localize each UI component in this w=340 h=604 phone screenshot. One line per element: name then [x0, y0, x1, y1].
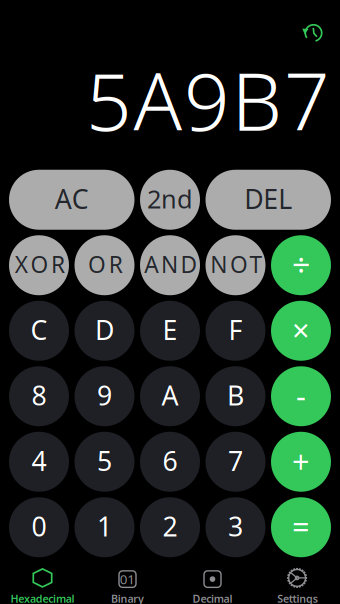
staticText: NOT: [210, 249, 262, 279]
button[interactable]: History: [294, 14, 331, 51]
staticText: 1: [97, 508, 112, 544]
staticText: ×: [292, 309, 310, 350]
button[interactable]: ×: [271, 301, 331, 361]
staticText: Decimal: [193, 591, 232, 604]
staticText: +: [292, 440, 310, 481]
staticText: 2nd: [147, 182, 193, 215]
staticText: AND: [144, 249, 197, 279]
staticText: 5A9B7: [86, 46, 330, 153]
staticText: DEL: [244, 181, 292, 216]
staticText: -: [296, 375, 306, 416]
button[interactable]: 3: [205, 497, 265, 557]
button[interactable]: DEL: [205, 170, 331, 230]
button[interactable]: 7: [205, 432, 265, 492]
staticText: D: [95, 312, 114, 347]
staticText: Hexadecimal: [10, 591, 74, 604]
button[interactable]: Settings: [255, 565, 340, 604]
staticText: 8: [31, 377, 46, 413]
staticText: 4: [31, 443, 46, 478]
button[interactable]: AC: [9, 170, 134, 230]
button[interactable]: A: [140, 366, 200, 426]
button[interactable]: 2nd: [140, 170, 200, 230]
button[interactable]: B: [205, 366, 265, 426]
button[interactable]: NOT: [205, 235, 265, 295]
button[interactable]: 01: [85, 565, 170, 604]
button[interactable]: 0: [9, 497, 69, 557]
button[interactable]: =: [271, 497, 331, 557]
button[interactable]: D: [74, 301, 134, 361]
button[interactable]: XOR: [9, 235, 69, 295]
button[interactable]: 4: [9, 432, 69, 492]
button[interactable]: F: [205, 301, 265, 361]
button[interactable]: OR: [74, 235, 134, 295]
button[interactable]: E: [140, 301, 200, 361]
button[interactable]: -: [271, 366, 331, 426]
staticText: Binary: [111, 591, 144, 604]
button[interactable]: 5: [74, 432, 134, 492]
button[interactable]: 2: [140, 497, 200, 557]
staticText: C: [30, 312, 47, 347]
staticText: OR: [88, 249, 123, 279]
button[interactable]: C: [9, 301, 69, 361]
staticText: E: [162, 312, 177, 347]
button[interactable]: Hexadecimal: [0, 565, 85, 604]
staticText: B: [227, 377, 244, 413]
staticText: ÷: [292, 243, 310, 285]
button[interactable]: 1: [74, 497, 134, 557]
button[interactable]: Decimal: [170, 565, 255, 604]
button[interactable]: 8: [9, 366, 69, 426]
button[interactable]: ÷: [271, 235, 331, 295]
staticText: 01: [120, 570, 135, 588]
staticText: 0: [31, 508, 46, 544]
staticText: 6: [162, 443, 177, 478]
staticText: 2: [162, 508, 177, 544]
staticText: 3: [228, 508, 243, 544]
staticText: A: [161, 377, 178, 413]
staticText: 9: [97, 377, 112, 413]
button[interactable]: +: [271, 432, 331, 492]
button[interactable]: AND: [140, 235, 200, 295]
staticText: Settings: [277, 591, 318, 604]
staticText: 5: [97, 443, 112, 478]
staticText: =: [292, 506, 310, 547]
staticText: XOR: [15, 249, 65, 279]
button[interactable]: 6: [140, 432, 200, 492]
staticText: AC: [55, 181, 89, 216]
button[interactable]: 9: [74, 366, 134, 426]
staticText: 7: [228, 443, 243, 478]
staticText: F: [228, 312, 242, 347]
